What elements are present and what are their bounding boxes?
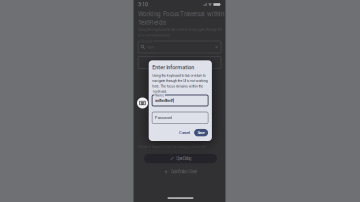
staticText: Enter Information: [152, 64, 194, 71]
staticText: asdfasdfasdf: [155, 98, 172, 103]
staticText: type...: [147, 45, 157, 49]
staticText: UI is not working here.: [138, 33, 171, 37]
button[interactable]: Cancel: [178, 129, 192, 136]
staticText: Cancel: [179, 130, 190, 135]
button[interactable]: Show keyboard: [137, 97, 148, 108]
staticText: Password: [155, 115, 172, 120]
staticText: Save: [197, 130, 205, 135]
staticText: Focus is trapped while the dialog is pre…: [138, 144, 207, 149]
staticText: here. The focus remains within the: [152, 84, 203, 88]
staticText: Using the keyboard to tab or return to n…: [138, 28, 222, 32]
staticText: 3:10: [138, 1, 148, 7]
staticText: TextField.: [152, 90, 167, 94]
staticText: Name: [155, 94, 164, 97]
staticText: navigate through the UI is not working: [152, 79, 208, 83]
button[interactable]: Save: [194, 129, 208, 136]
staticText: Using the keyboard to tab or return to: [152, 73, 206, 78]
staticText: Working Focus Traversal within: [138, 10, 224, 18]
staticText: TextFields: [138, 19, 166, 26]
staticText: Open Dialog: [176, 156, 191, 161]
button[interactable]: Open Bottom Sheet: [144, 168, 217, 176]
button[interactable]: Open Dialog: [144, 154, 217, 163]
staticText: Open Bottom Sheet: [170, 169, 196, 174]
